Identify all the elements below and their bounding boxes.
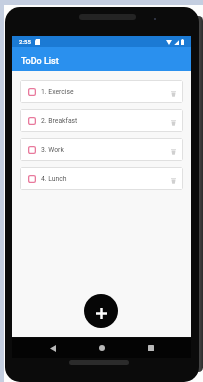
- button[interactable]: Recent apps: [142, 339, 160, 357]
- button[interactable]: 3. Work: [20, 138, 183, 161]
- staticText: 2. Breakfast: [41, 117, 78, 125]
- button[interactable]: Delete: [168, 146, 179, 157]
- staticText: 1. Exercise: [41, 88, 74, 96]
- staticText: 4. Lunch: [41, 175, 67, 183]
- staticText: ToDo List: [21, 56, 59, 67]
- button[interactable]: Back: [44, 339, 62, 357]
- staticText: 2:55: [19, 38, 31, 45]
- button[interactable]: Delete: [168, 88, 179, 99]
- button[interactable]: 4. Lunch: [20, 167, 183, 190]
- staticText: 3. Work: [41, 146, 64, 154]
- button[interactable]: Delete: [168, 117, 179, 128]
- button[interactable]: Home: [93, 339, 111, 357]
- button[interactable]: 2. Breakfast: [20, 109, 183, 132]
- button[interactable]: 1. Exercise: [20, 80, 183, 103]
- button[interactable]: Add task: [84, 294, 118, 328]
- button[interactable]: Delete: [168, 175, 179, 186]
